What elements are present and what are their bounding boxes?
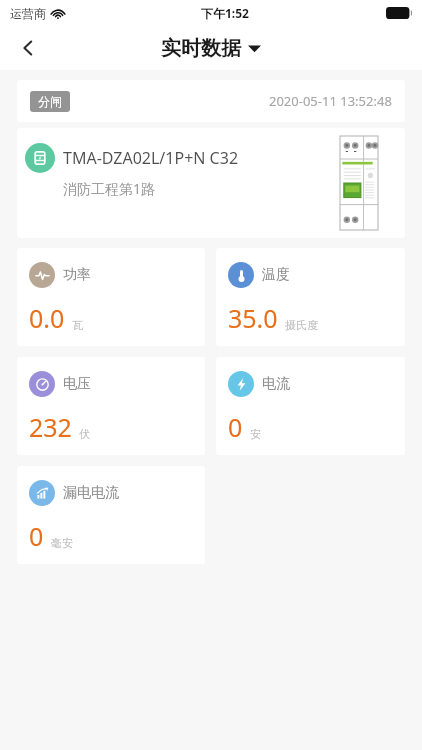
button[interactable]: 电流	[216, 357, 405, 455]
staticText: 35.0	[228, 301, 278, 335]
staticText: 安	[250, 427, 261, 441]
button[interactable]: 实时数据	[161, 36, 261, 61]
staticText: 0.0	[29, 301, 65, 335]
button[interactable]: TMA-DZA02L/1P+N C32	[17, 128, 405, 238]
button[interactable]: Back	[8, 28, 48, 68]
staticText: 232	[29, 410, 72, 444]
staticText: 下午1:52	[201, 5, 249, 21]
staticText: 电流	[262, 375, 290, 393]
staticText: 瓦	[72, 318, 83, 332]
staticText: 0	[228, 410, 243, 444]
staticText: 漏电电流	[63, 484, 119, 502]
staticText: 消防工程第1路	[63, 179, 156, 198]
staticText: 实时数据	[161, 36, 241, 61]
staticText: 0	[29, 519, 44, 553]
button[interactable]: 分闸	[17, 80, 405, 122]
staticText: 2020-05-11 13:52:48	[269, 92, 392, 110]
button[interactable]: 功率	[17, 248, 205, 346]
button[interactable]: 电压	[17, 357, 205, 455]
staticText: 温度	[262, 266, 290, 284]
staticText: 伏	[79, 427, 90, 441]
staticText: 功率	[63, 266, 91, 284]
staticText: 摄氏度	[285, 318, 318, 332]
button[interactable]: 温度	[216, 248, 405, 346]
staticText: 电压	[63, 375, 91, 393]
staticText: TMA-DZA02L/1P+N C32	[63, 147, 239, 169]
staticText: 分闸	[38, 94, 62, 109]
button[interactable]: 漏电电流	[17, 466, 205, 564]
staticText: 毫安	[51, 536, 73, 550]
staticText: 运营商	[10, 6, 46, 21]
